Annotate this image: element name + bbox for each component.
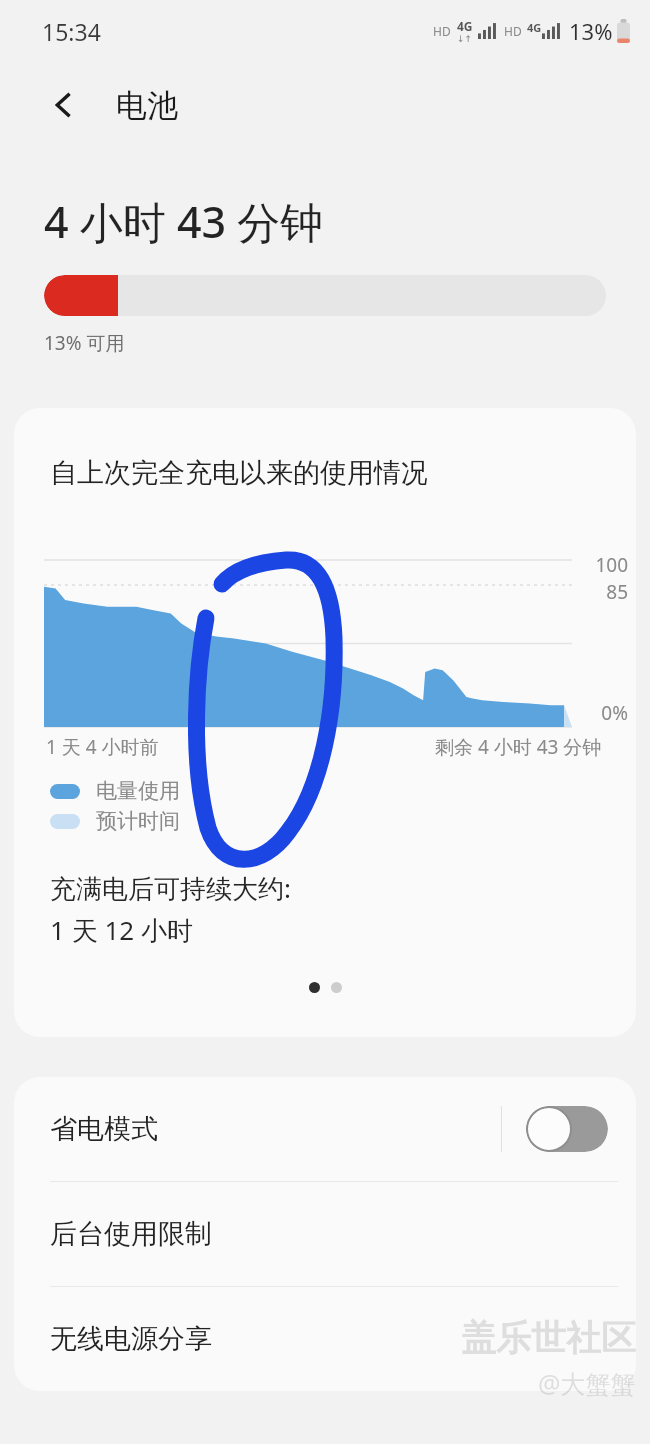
staticText: 4G	[527, 20, 542, 35]
button[interactable]: Back	[36, 77, 92, 133]
button[interactable]: 省电模式	[14, 1077, 636, 1181]
button[interactable]: 后台使用限制	[14, 1182, 636, 1286]
button[interactable]: 无线电源分享	[14, 1287, 636, 1391]
staticText: 后台使用限制	[50, 1217, 212, 1251]
staticText: 盖乐世社区	[461, 1316, 636, 1360]
staticText: 电量使用	[96, 778, 180, 804]
staticText: 1 天 12 小时	[50, 912, 193, 948]
staticText: @大蟹蟹	[538, 1366, 636, 1400]
staticText: 省电模式	[50, 1112, 158, 1146]
staticText: 1 天 4 小时前	[46, 734, 159, 760]
staticText: 自上次完全充电以来的使用情况	[50, 456, 428, 490]
staticText: ↓↑	[457, 34, 473, 44]
staticText: 4 小时 43 分钟	[44, 192, 324, 251]
staticText: 充满电后可持续大约:	[50, 870, 291, 906]
staticText: 无线电源分享	[50, 1322, 212, 1356]
staticText: 13% 可用	[44, 330, 125, 356]
staticText: 剩余 4 小时 43 分钟	[435, 734, 602, 760]
staticText: 电池	[116, 86, 178, 125]
staticText: HD	[504, 23, 522, 39]
staticText: 15:34	[42, 16, 101, 47]
staticText: 4G	[457, 18, 473, 34]
staticText: 0%	[14, 700, 628, 726]
staticText: 85	[14, 579, 628, 605]
staticText: HD	[433, 23, 451, 39]
staticText: 100	[14, 552, 628, 578]
button[interactable]: Power saving toggle	[526, 1106, 608, 1152]
staticText: 13%	[569, 16, 613, 46]
staticText: 预计时间	[96, 808, 180, 834]
